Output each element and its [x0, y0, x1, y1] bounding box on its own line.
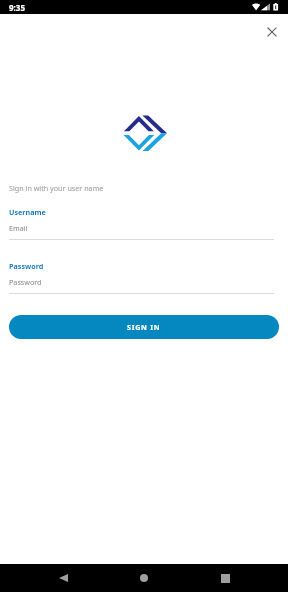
- button[interactable]: Close: [258, 18, 286, 46]
- button[interactable]: Recents: [185, 564, 265, 592]
- staticText: Password: [9, 261, 44, 271]
- staticText: Email: [9, 223, 28, 233]
- button[interactable]: Password: [0, 261, 288, 294]
- button[interactable]: Home: [104, 564, 184, 592]
- staticText: Username: [9, 207, 46, 217]
- staticText: 9:35: [9, 2, 25, 13]
- staticText: Password: [9, 277, 42, 287]
- staticText: SIGN IN: [127, 322, 161, 332]
- button[interactable]: Back: [23, 564, 103, 592]
- button[interactable]: SIGN IN: [9, 315, 279, 339]
- button[interactable]: Username: [0, 207, 288, 240]
- staticText: Sign in with your user name: [9, 183, 104, 193]
